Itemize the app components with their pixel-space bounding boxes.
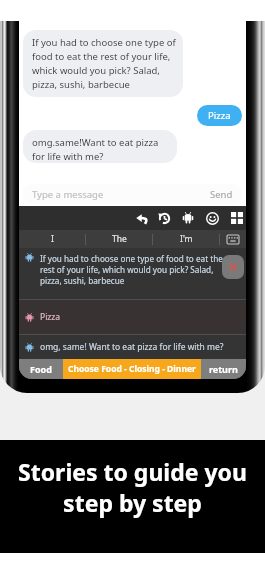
staticText: Food xyxy=(30,363,52,375)
button[interactable]: omg.same!Want to eat pizza for life with… xyxy=(23,130,177,163)
staticText: Type a message xyxy=(32,188,104,201)
staticText: Pizza xyxy=(208,109,231,122)
staticText: Pizza xyxy=(40,311,61,323)
button[interactable]: omg, same! Want to eat pizza for life wi… xyxy=(19,335,246,359)
staticText: step by step xyxy=(63,487,202,518)
staticText: Stories to guide you xyxy=(18,456,247,487)
button[interactable]: Delete xyxy=(222,255,244,279)
staticText: I xyxy=(51,233,54,245)
staticText: If you had to choose one type of food to… xyxy=(40,253,223,286)
button[interactable]: Android xyxy=(177,206,199,230)
staticText: return xyxy=(209,363,238,375)
button[interactable]: If you had to choose one type of food to… xyxy=(19,248,246,299)
button[interactable]: return xyxy=(201,359,246,379)
staticText: I'm xyxy=(180,233,193,245)
button[interactable]: Food xyxy=(19,359,63,379)
staticText: The xyxy=(112,233,127,245)
staticText: Choose Food - Closing - Dinner xyxy=(68,363,196,375)
button[interactable]: Type a message xyxy=(22,184,243,204)
button[interactable]: The xyxy=(86,230,152,248)
staticText: Send xyxy=(210,188,233,201)
button[interactable]: I'm xyxy=(153,230,219,248)
staticText: omg.same!Want to eat pizza for life with… xyxy=(32,136,170,163)
button[interactable]: Choose Food - Closing - Dinner xyxy=(63,359,201,379)
staticText: omg, same! Want to eat pizza for life wi… xyxy=(40,341,224,353)
button[interactable]: Pizza xyxy=(19,300,246,334)
button[interactable]: Keyboard xyxy=(220,230,246,248)
button[interactable]: I xyxy=(19,230,85,248)
button[interactable]: Apps xyxy=(226,206,246,230)
staticText: If you had to choose one type of food to… xyxy=(32,36,176,91)
button[interactable]: If you had to choose one type of food to… xyxy=(23,30,183,97)
button[interactable]: Emoji xyxy=(201,206,223,230)
button[interactable]: History xyxy=(153,206,175,230)
button[interactable]: Pizza xyxy=(197,105,242,126)
button[interactable]: Undo xyxy=(131,206,153,230)
